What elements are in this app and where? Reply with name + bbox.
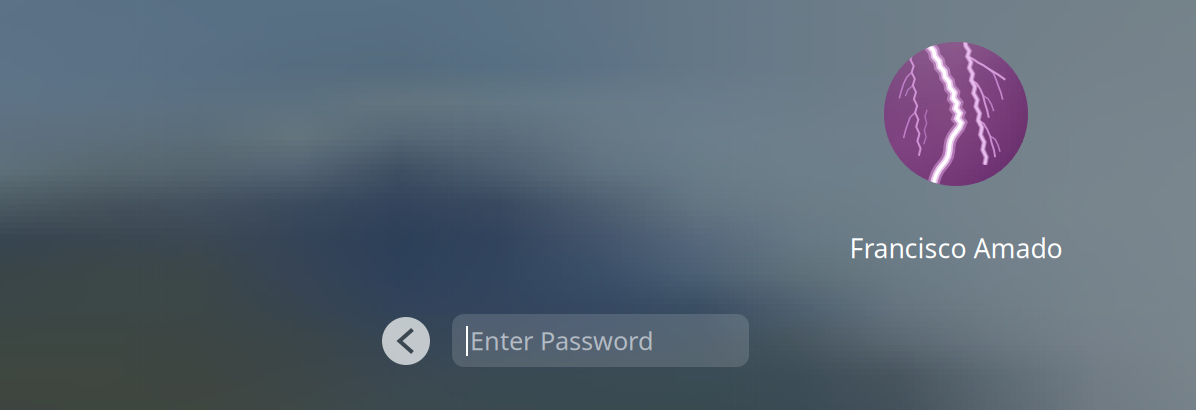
staticText: Enter Password <box>470 324 654 357</box>
staticText: Francisco Amado <box>849 230 1062 266</box>
button[interactable]: Enter Password <box>452 314 749 367</box>
button[interactable]: Back <box>382 317 430 365</box>
